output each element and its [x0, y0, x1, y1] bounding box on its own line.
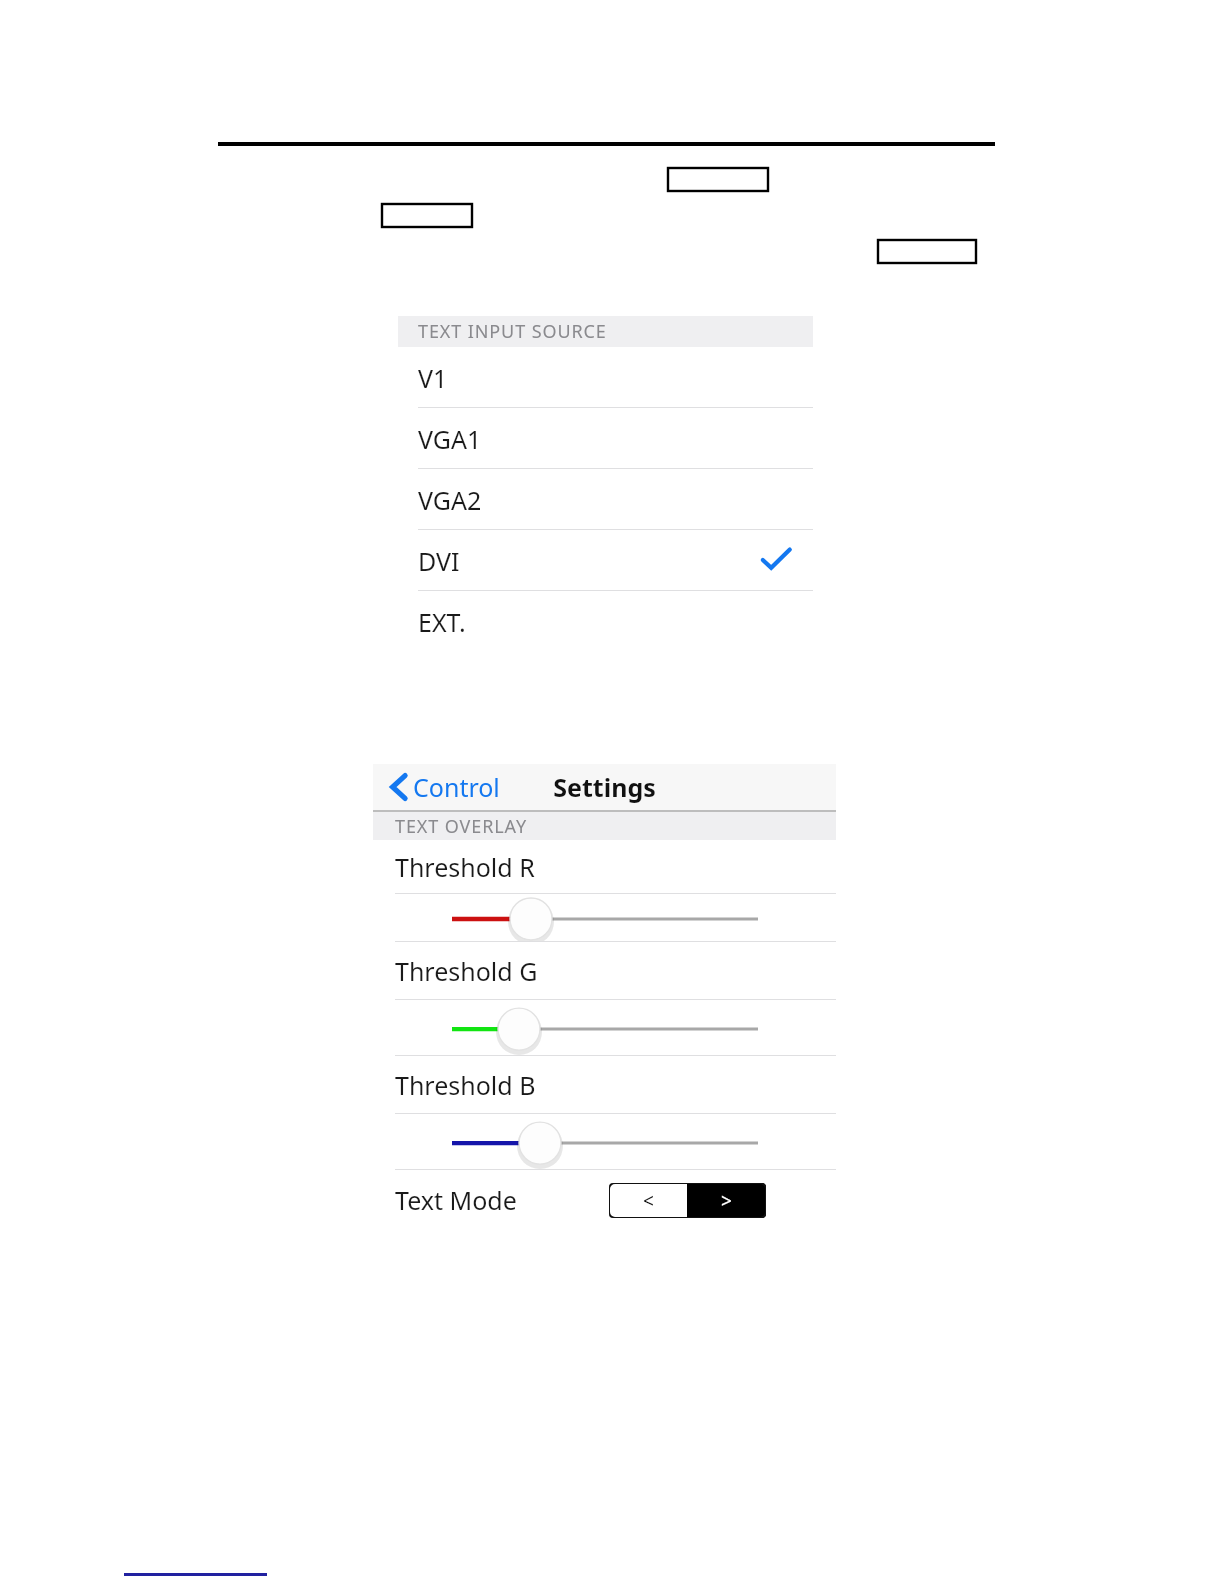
- button[interactable]: Threshold G: [373, 942, 836, 1000]
- staticText: VGA2: [418, 483, 482, 517]
- button[interactable]: Threshold slider: [373, 1000, 836, 1056]
- button[interactable]: EXT.: [398, 591, 813, 652]
- staticText: DVI: [418, 544, 460, 578]
- staticText: Threshold B: [395, 1068, 536, 1102]
- staticText: Settings: [553, 770, 656, 804]
- button[interactable]: Placeholder field: [667, 167, 769, 192]
- button[interactable]: Next text mode: [687, 1183, 766, 1218]
- button[interactable]: Threshold R: [373, 840, 836, 894]
- staticText: V1: [418, 361, 448, 395]
- button[interactable]: Control: [385, 764, 525, 810]
- button[interactable]: Placeholder field: [877, 239, 977, 264]
- button[interactable]: VGA2: [398, 469, 813, 530]
- staticText: TEXT OVERLAY: [395, 814, 527, 839]
- staticText: EXT.: [418, 605, 466, 639]
- staticText: Text Mode: [395, 1183, 517, 1217]
- staticText: VGA1: [418, 422, 482, 456]
- staticText: Threshold R: [395, 850, 535, 884]
- staticText: <: [643, 1188, 654, 1214]
- button[interactable]: V1: [398, 347, 813, 408]
- button[interactable]: Threshold B: [373, 1056, 836, 1114]
- button[interactable]: DVI: [398, 530, 813, 591]
- staticText: Control: [413, 770, 500, 804]
- button[interactable]: Threshold slider: [373, 1114, 836, 1170]
- button[interactable]: Placeholder field: [381, 203, 473, 228]
- button[interactable]: VGA1: [398, 408, 813, 469]
- staticText: Threshold G: [395, 954, 538, 988]
- button[interactable]: Previous text mode: [609, 1183, 687, 1218]
- button[interactable]: Threshold slider: [373, 894, 836, 942]
- staticText: >: [721, 1188, 732, 1214]
- staticText: TEXT INPUT SOURCE: [418, 319, 607, 344]
